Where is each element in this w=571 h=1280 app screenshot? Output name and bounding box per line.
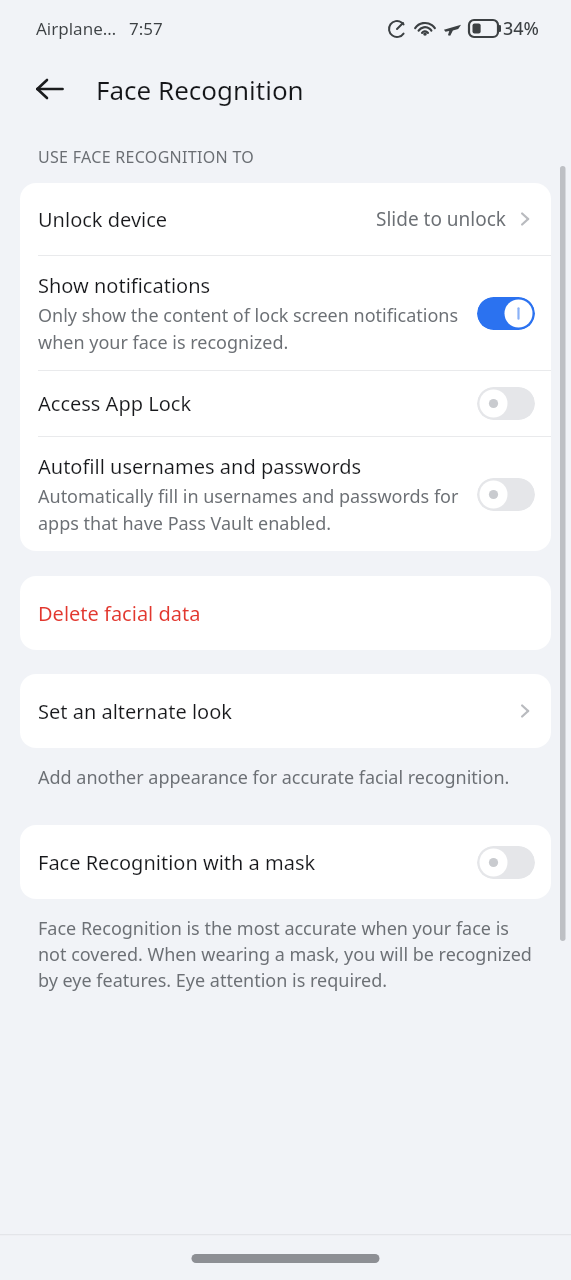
staticText: Face Recognition is the most accurate wh… [38,916,533,993]
staticText: Only show the content of lock screen not… [38,303,465,354]
other: Open [513,699,537,723]
button[interactable]: Delete facial data [20,576,551,650]
button[interactable]: Off [477,478,535,511]
button[interactable]: Show notifications [20,256,551,370]
button[interactable]: Face Recognition with a mask [20,825,551,899]
staticText: USE FACE RECOGNITION TO [38,146,255,168]
button[interactable]: Access App Lock [20,371,551,436]
staticText: Slide to unlock [376,206,507,232]
staticText: Unlock device [38,206,376,233]
staticText: Face Recognition with a mask [38,849,477,876]
staticText: Access App Lock [38,390,192,417]
staticText: Autofill usernames and passwords [38,453,362,480]
staticText: Set an alternate look [38,698,513,725]
staticText: Delete facial data [38,600,201,627]
button[interactable]: On [477,297,535,330]
staticText: Automatically fill in usernames and pass… [38,484,465,535]
button[interactable]: Set an alternate look [20,674,551,748]
button[interactable]: Off [477,387,535,420]
staticText: Add another appearance for accurate faci… [38,765,533,790]
staticText: Airplane… [36,17,117,40]
staticText: 34% [503,16,539,41]
staticText: Show notifications [38,272,211,299]
staticText: 7:57 [129,17,163,40]
other: Open [513,207,537,231]
button[interactable]: Autofill usernames and passwords [20,437,551,551]
staticText: Face Recognition [96,72,304,107]
button[interactable]: Off [477,846,535,879]
button[interactable]: Back [24,63,76,115]
button[interactable]: Unlock device [20,183,551,255]
